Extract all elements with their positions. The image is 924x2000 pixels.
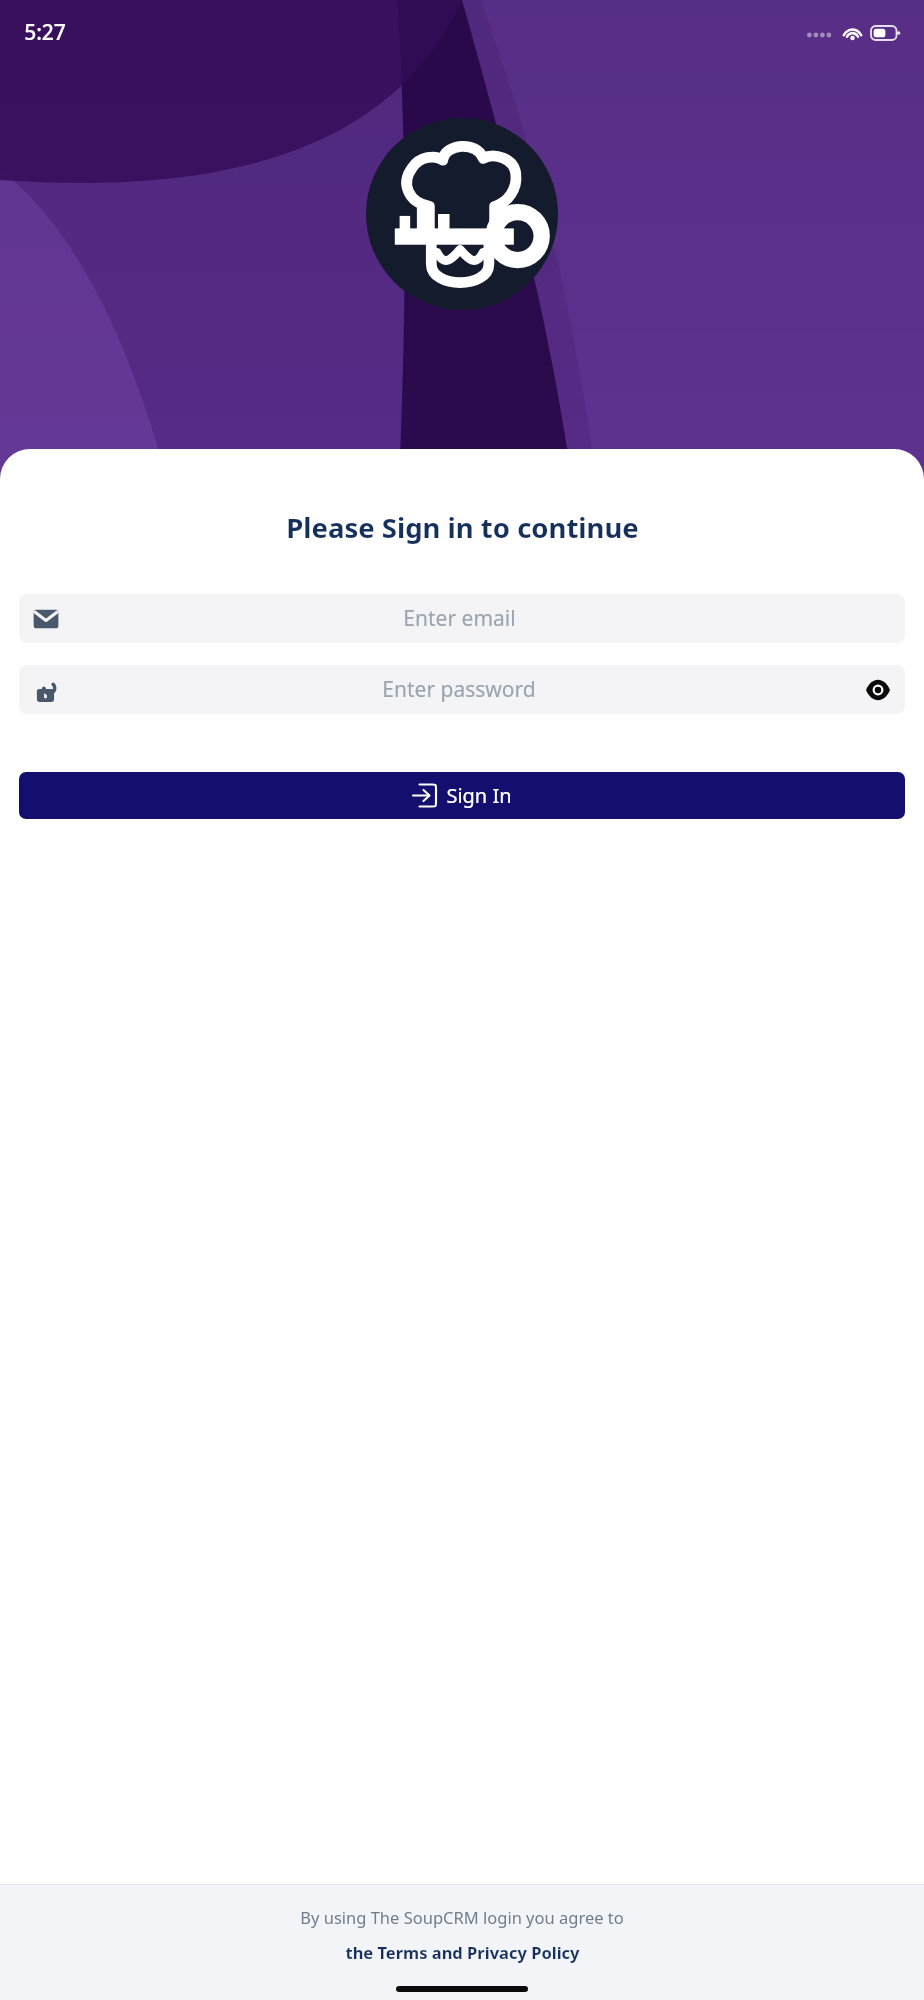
staticText: the Terms and Privacy Policy: [345, 1941, 580, 1963]
staticText: 5:27: [24, 18, 66, 47]
button[interactable]: the Terms and Privacy Policy: [345, 1941, 580, 1963]
staticText: Please Sign in to continue: [286, 509, 639, 546]
staticText: Enter email: [403, 604, 516, 633]
staticText: Sign In: [446, 782, 512, 809]
button[interactable]: Show password: [859, 671, 897, 709]
button[interactable]: Enter password: [19, 665, 905, 714]
staticText: By using The SoupCRM login you agree to: [300, 1906, 624, 1928]
button[interactable]: Enter email: [19, 594, 905, 643]
button[interactable]: Sign In: [19, 772, 905, 819]
staticText: Enter password: [382, 675, 536, 704]
